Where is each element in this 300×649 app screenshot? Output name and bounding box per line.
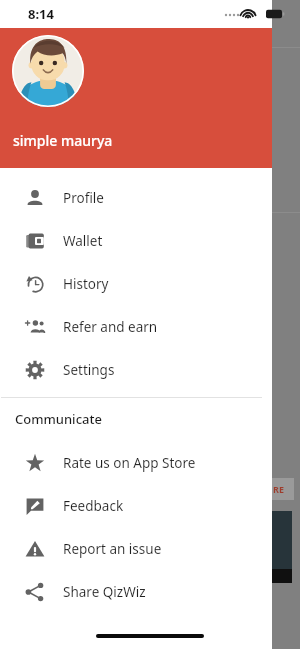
staticText: 8:14	[28, 5, 54, 23]
staticText: Refer and earn	[63, 318, 158, 336]
staticText: Communicate	[15, 410, 102, 428]
button[interactable]: Report an issue	[0, 527, 272, 570]
staticText: Report an issue	[63, 540, 162, 558]
staticText: Share QizWiz	[63, 583, 146, 601]
staticText: History	[63, 275, 109, 293]
button[interactable]: History	[0, 262, 272, 305]
staticText: simple maurya	[13, 131, 113, 150]
button[interactable]: Rate us on App Store	[0, 441, 272, 484]
button[interactable]: Wallet	[0, 219, 272, 262]
staticText: Feedback	[63, 497, 124, 515]
button[interactable]: Refer and earn	[0, 305, 272, 348]
button[interactable]: Share QizWiz	[0, 570, 272, 613]
staticText: RE	[273, 483, 284, 495]
button[interactable]: simple maurya	[0, 28, 272, 168]
staticText: Profile	[63, 189, 104, 207]
staticText: Settings	[63, 361, 115, 379]
staticText: Wallet	[63, 232, 103, 250]
button[interactable]: Profile	[0, 176, 272, 219]
button[interactable]: Settings	[0, 348, 272, 391]
button[interactable]: Feedback	[0, 484, 272, 527]
staticText: Rate us on App Store	[63, 454, 196, 472]
